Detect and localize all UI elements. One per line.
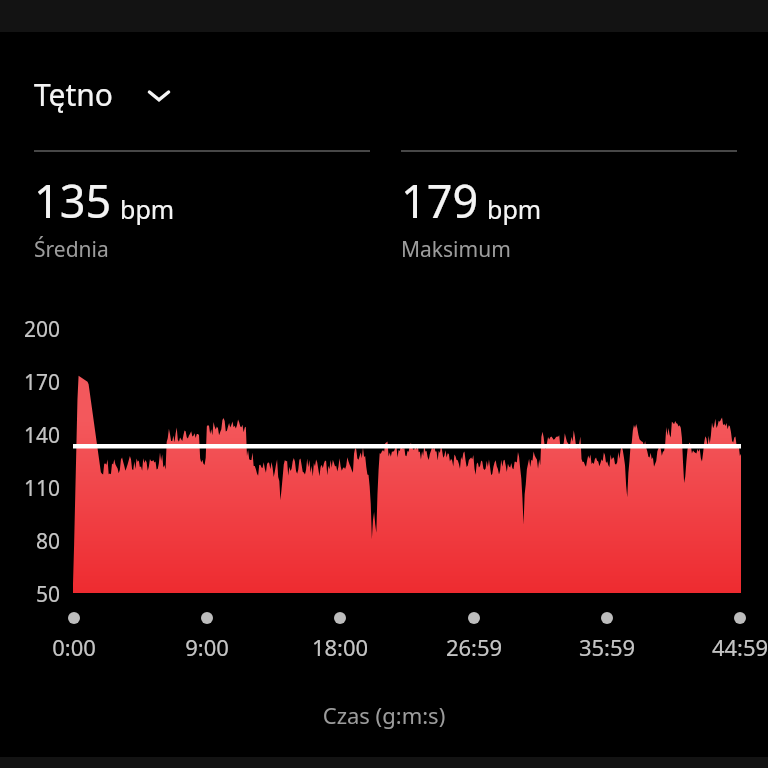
staticText: 50 (8, 580, 60, 609)
button[interactable]: 179 (401, 150, 737, 264)
button[interactable]: 135 (34, 150, 370, 264)
staticText: 80 (8, 527, 60, 556)
staticText: 170 (8, 368, 60, 397)
staticText: 110 (8, 474, 60, 503)
staticText: 26:59 (414, 632, 534, 662)
staticText: 35:59 (547, 632, 667, 662)
staticText: 18:00 (280, 632, 400, 662)
staticText: 140 (8, 421, 60, 450)
staticText: bpm (120, 192, 175, 226)
staticText: Czas (g:m:s) (0, 700, 768, 730)
staticText: Średnia (34, 235, 109, 264)
staticText: 179 (401, 170, 479, 231)
button[interactable]: Tętno (30, 74, 174, 115)
staticText: 0:00 (14, 632, 134, 662)
staticText: bpm (487, 192, 542, 226)
staticText: 44:59 (680, 632, 768, 662)
staticText: 135 (34, 170, 112, 231)
staticText: Maksimum (401, 235, 511, 264)
staticText: Tętno (34, 74, 114, 115)
staticText: 200 (8, 315, 60, 344)
staticText: 9:00 (147, 632, 267, 662)
other: Expand (144, 80, 174, 110)
